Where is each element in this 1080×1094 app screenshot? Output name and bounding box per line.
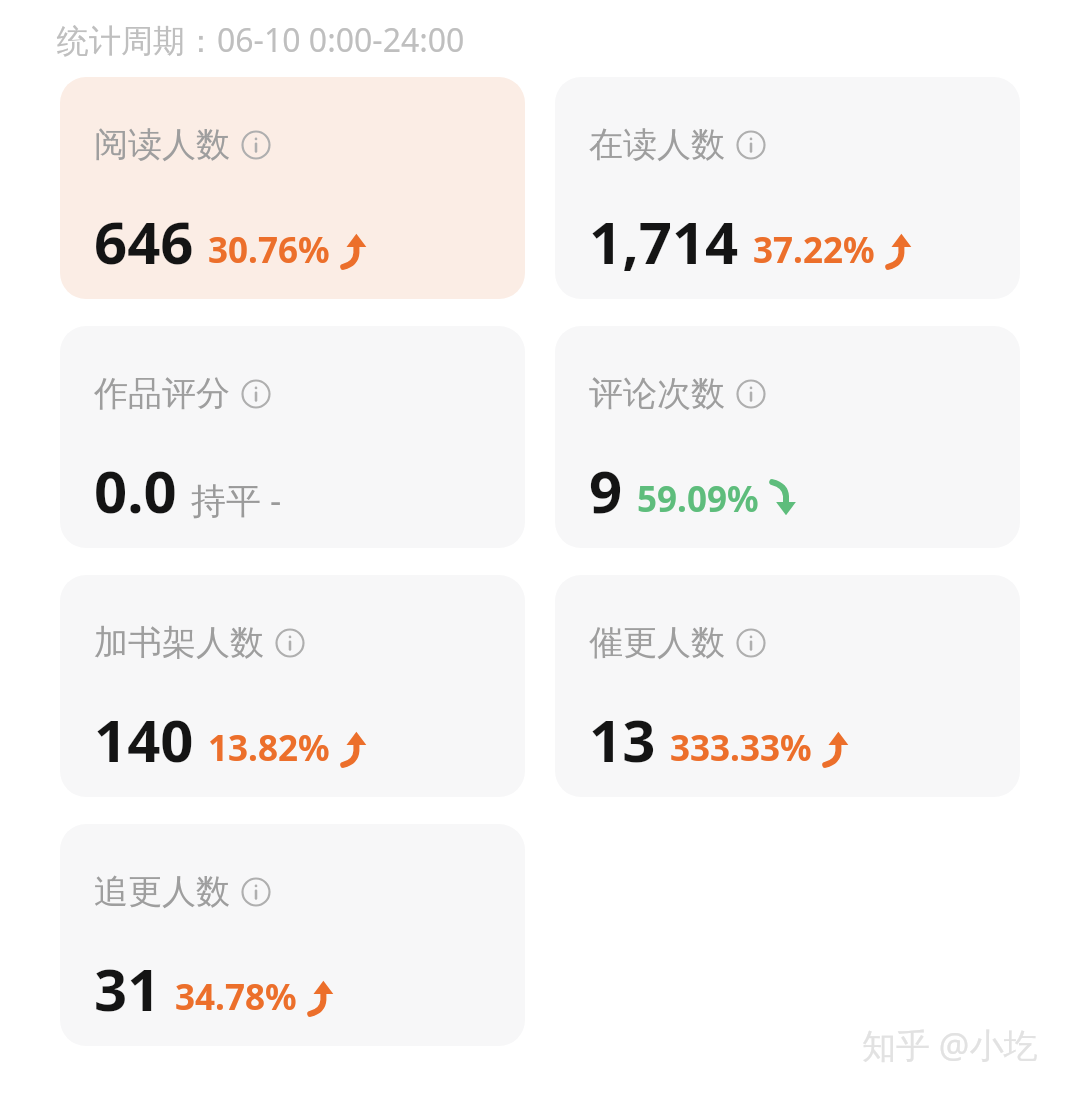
staticText: 在读人数 <box>589 123 725 166</box>
button[interactable]: 评论次数 <box>555 326 1020 548</box>
button[interactable]: 说明 <box>736 379 766 409</box>
staticText: 1,714 <box>589 202 739 281</box>
staticText: 催更人数 <box>589 621 725 664</box>
staticText: 统计周期：06-10 0:00-24:00 <box>57 18 465 62</box>
button[interactable]: 说明 <box>241 877 271 907</box>
staticText: 阅读人数 <box>94 123 230 166</box>
staticText: 31 <box>94 949 161 1028</box>
button[interactable]: 加书架人数 <box>60 575 525 797</box>
staticText: 333.33% <box>670 724 812 772</box>
staticText: 0.0 <box>94 451 177 530</box>
staticText: 646 <box>94 202 194 281</box>
button[interactable]: 追更人数 <box>60 824 525 1046</box>
button[interactable]: 作品评分 <box>60 326 525 548</box>
staticText: 持平 - <box>191 476 282 524</box>
staticText: 37.22% <box>753 226 875 274</box>
button[interactable]: 说明 <box>275 628 305 658</box>
button[interactable]: 阅读人数 <box>60 77 525 299</box>
staticText: 59.09% <box>637 475 759 523</box>
button[interactable]: 说明 <box>241 379 271 409</box>
staticText: 34.78% <box>175 973 297 1021</box>
button[interactable]: 说明 <box>736 628 766 658</box>
button[interactable]: 说明 <box>736 130 766 160</box>
button[interactable]: 在读人数 <box>555 77 1020 299</box>
staticText: 140 <box>94 700 194 779</box>
staticText: 评论次数 <box>589 372 725 415</box>
staticText: 知乎 @小圪 <box>862 1022 1038 1068</box>
staticText: 追更人数 <box>94 870 230 913</box>
button[interactable]: 催更人数 <box>555 575 1020 797</box>
staticText: 13.82% <box>208 724 330 772</box>
staticText: 13 <box>589 700 656 779</box>
staticText: 作品评分 <box>94 372 230 415</box>
staticText: 加书架人数 <box>94 621 264 664</box>
staticText: 9 <box>589 451 623 530</box>
button[interactable]: 说明 <box>241 130 271 160</box>
staticText: 30.76% <box>208 226 330 274</box>
